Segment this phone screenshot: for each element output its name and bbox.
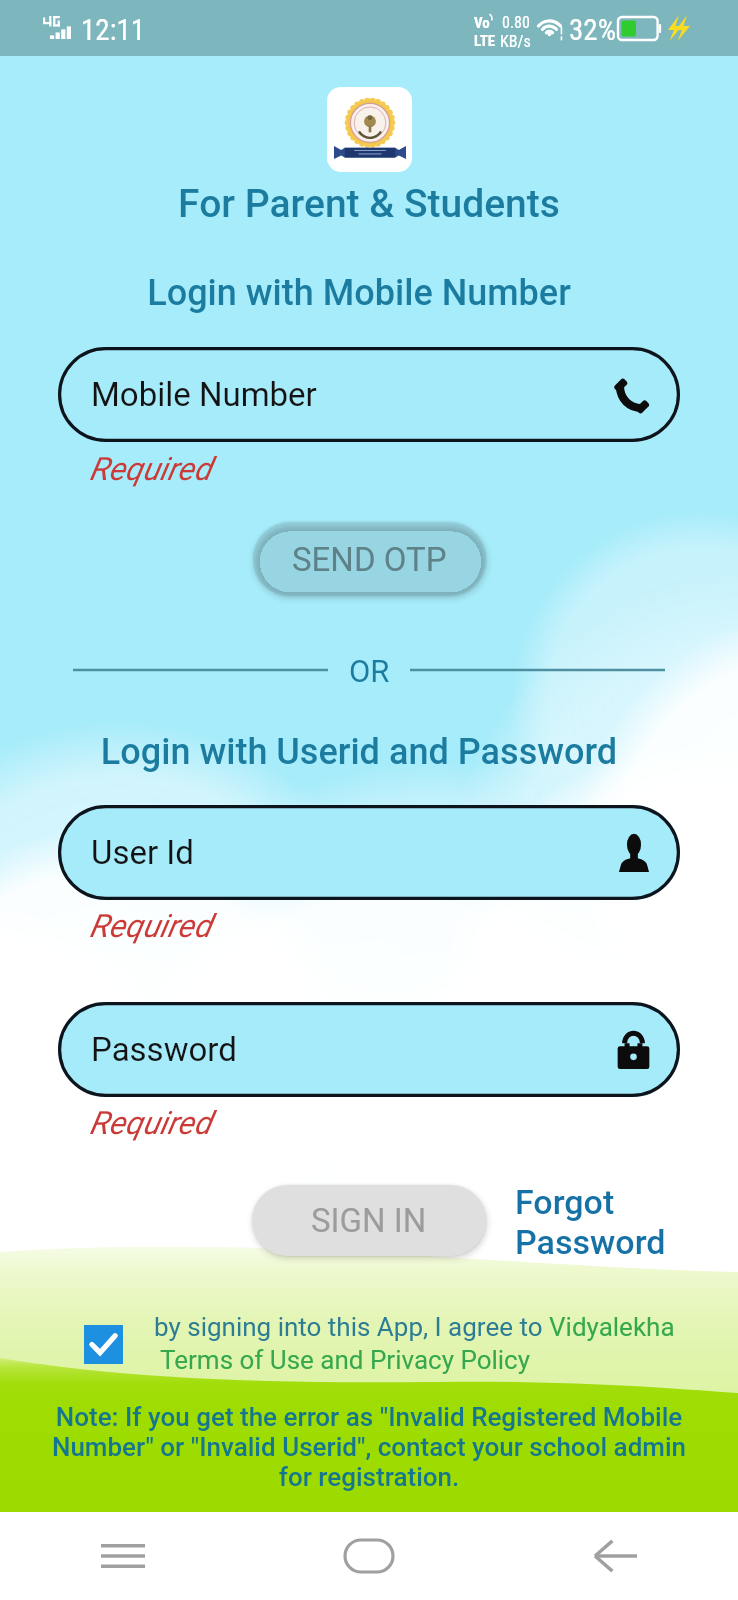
staticText: Vidyalekha bbox=[549, 1312, 675, 1342]
staticText: SEND OTP bbox=[292, 540, 447, 579]
staticText: User Id bbox=[91, 833, 194, 872]
staticText: For Parent & Students bbox=[0, 181, 738, 227]
staticText: Required bbox=[89, 450, 212, 488]
button[interactable]: Agree to terms and conditions bbox=[84, 1325, 123, 1364]
staticText: 32% bbox=[569, 13, 616, 47]
staticText: 0.80 bbox=[502, 13, 530, 32]
staticText: Login with Userid and Password bbox=[0, 731, 728, 773]
staticText: Forgot bbox=[515, 1182, 615, 1222]
button[interactable]: Home bbox=[246, 1512, 492, 1600]
staticText: Vo bbox=[474, 14, 490, 32]
staticText: Required bbox=[89, 1104, 212, 1142]
staticText: 12:11 bbox=[81, 13, 146, 47]
staticText: Mobile Number bbox=[91, 375, 317, 414]
button[interactable]: User Id bbox=[58, 805, 680, 900]
staticText: Required bbox=[89, 907, 212, 945]
button[interactable]: Mobile Number bbox=[58, 347, 680, 442]
staticText: by signing into this App, I agree to bbox=[154, 1312, 549, 1342]
button[interactable]: Recent apps bbox=[0, 1512, 246, 1600]
button[interactable]: by signing into this App, I agree to bbox=[154, 1312, 675, 1375]
staticText: Note: If you get the error as "Invalid R… bbox=[50, 1402, 688, 1492]
button[interactable]: Back bbox=[492, 1512, 738, 1600]
staticText: Password bbox=[515, 1222, 666, 1262]
staticText: Password bbox=[91, 1030, 237, 1069]
staticText: Login with Mobile Number bbox=[0, 272, 728, 314]
staticText: SIGN IN bbox=[311, 1201, 427, 1240]
staticText: OR bbox=[349, 653, 390, 689]
button[interactable]: Password bbox=[58, 1002, 680, 1097]
staticText: Terms of Use and Privacy Policy bbox=[160, 1345, 531, 1375]
staticText: LTE bbox=[474, 32, 496, 50]
button[interactable]: SIGN IN bbox=[252, 1185, 486, 1256]
button[interactable]: Forgot bbox=[515, 1182, 666, 1262]
button[interactable]: SEND OTP bbox=[253, 522, 486, 596]
staticText: KB/s bbox=[500, 32, 531, 51]
